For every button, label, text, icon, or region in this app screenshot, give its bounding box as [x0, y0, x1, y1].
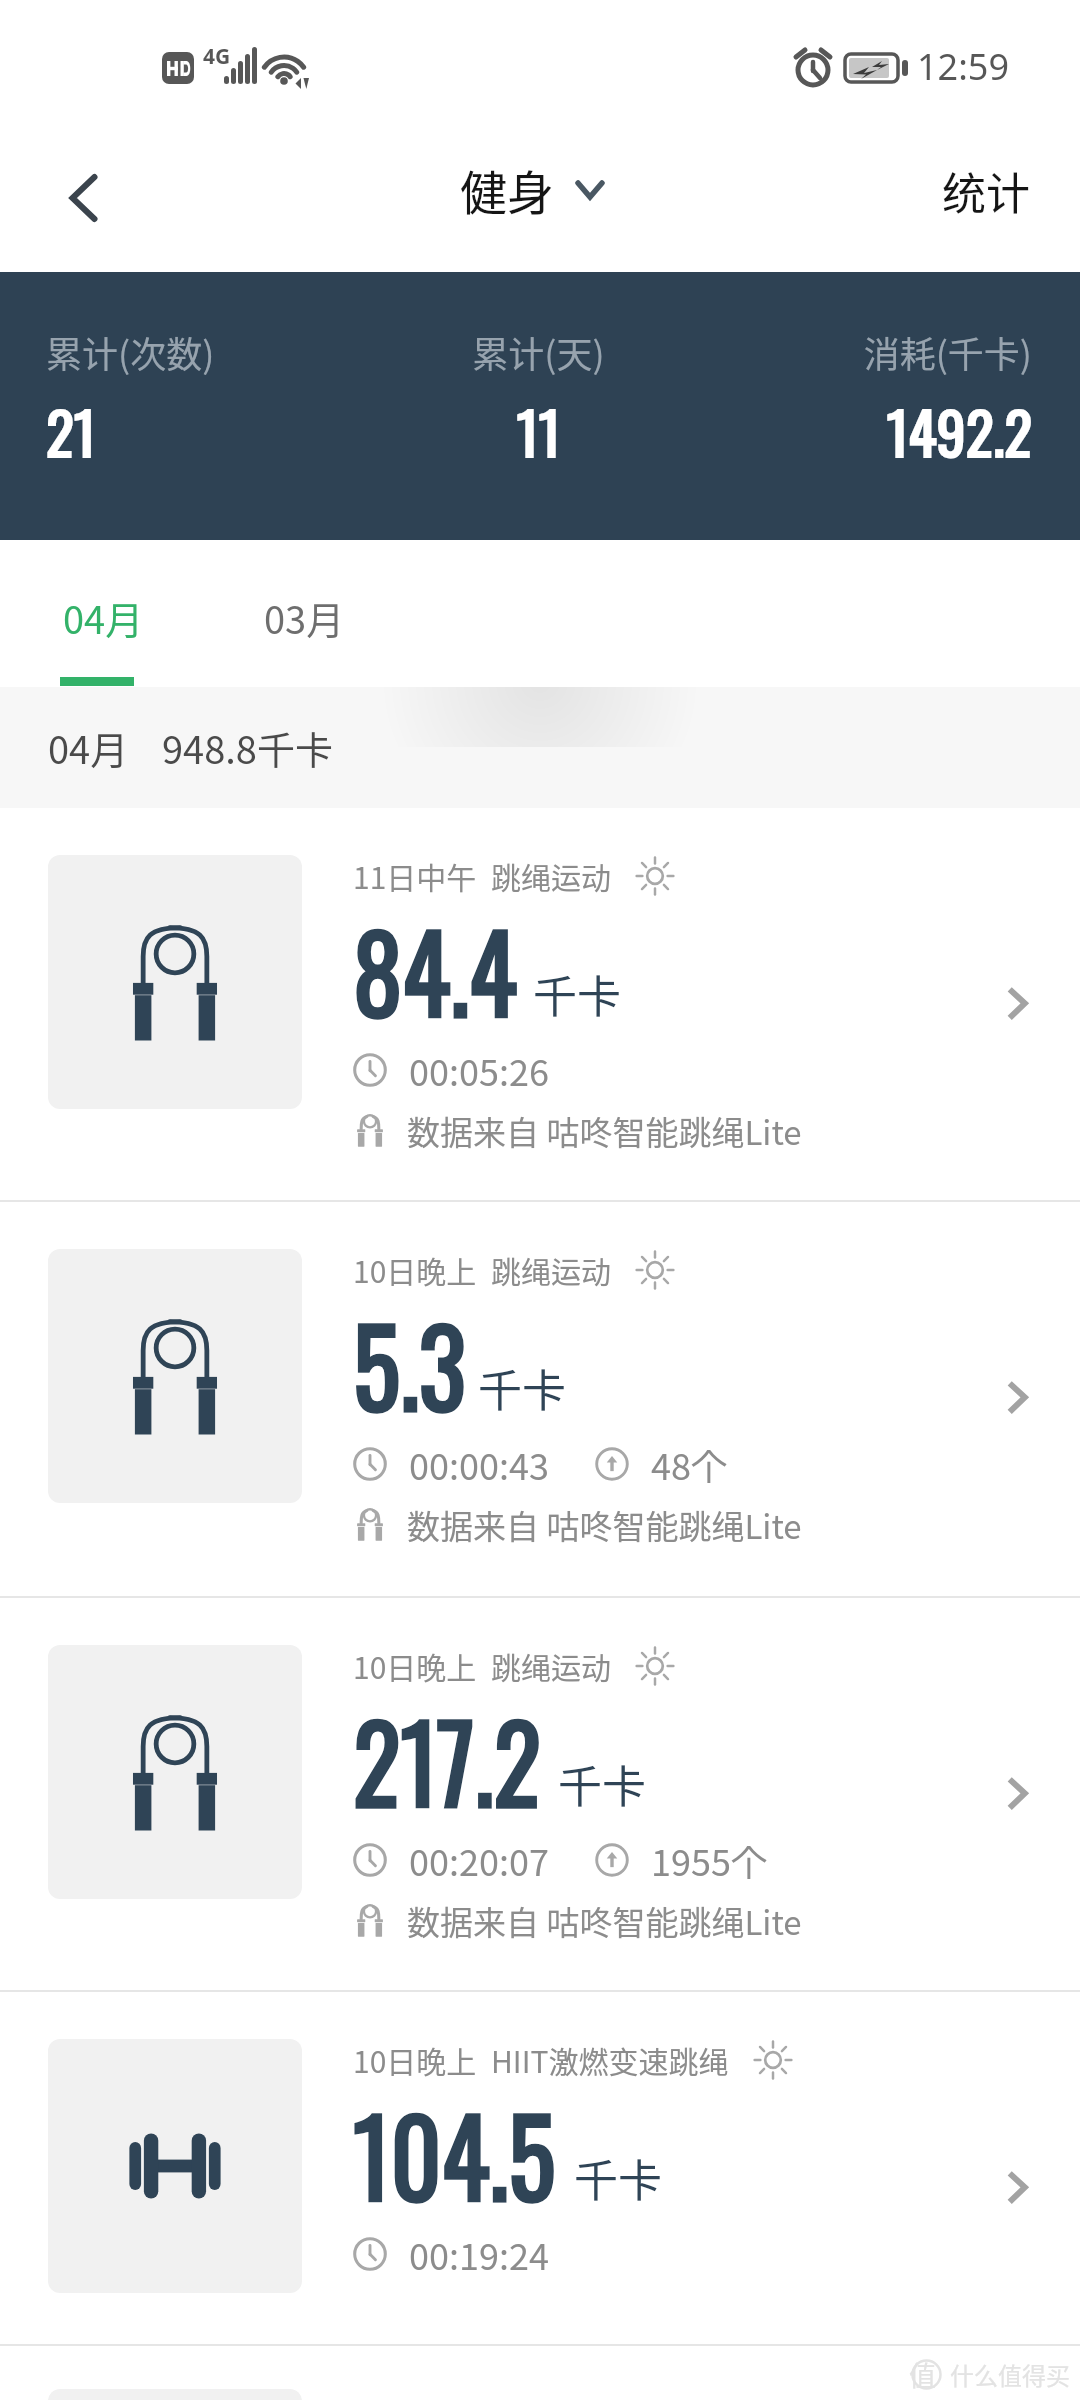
staticText: HIIT激燃变速跳绳	[491, 2038, 729, 2081]
staticText: 值	[909, 2355, 936, 2394]
staticText: 跳绳运动	[491, 854, 611, 897]
staticText: 数据来自 咕咚智能跳绳Lite	[407, 1501, 802, 1549]
button[interactable]: 健身	[460, 155, 604, 223]
staticText: 5.3	[353, 1285, 466, 1442]
staticText: 48个	[651, 1438, 727, 1490]
staticText: 00:20:07	[409, 1834, 549, 1886]
button[interactable]	[0, 2346, 1080, 2400]
staticText: 00:05:26	[409, 1044, 549, 1096]
staticText: 跳绳运动	[491, 1248, 611, 1291]
staticText: 1955个	[651, 1834, 767, 1886]
button[interactable]: 10日晚上	[0, 1202, 1080, 1596]
staticText: 00:19:24	[409, 2228, 549, 2280]
staticText: 千卡	[558, 1752, 646, 1816]
button[interactable]: 04月	[29, 540, 177, 687]
staticText: 数据来自 咕咚智能跳绳Lite	[407, 1897, 802, 1945]
staticText: 12:59	[917, 42, 1010, 91]
staticText: 什么值得买	[950, 2357, 1070, 2392]
staticText: 04月	[63, 590, 144, 645]
staticText: 03月	[264, 590, 345, 645]
staticText: 10日晚上	[353, 1248, 477, 1291]
button[interactable]: 03月	[230, 540, 378, 687]
staticText: 数据来自 咕咚智能跳绳Lite	[407, 1107, 802, 1155]
staticText: 1492.2	[703, 388, 1032, 474]
staticText: 跳绳运动	[491, 1644, 611, 1687]
staticText: 11	[374, 388, 703, 474]
staticText: 948.8千卡	[162, 720, 333, 775]
staticText: 21	[46, 388, 374, 474]
button[interactable]: Back	[0, 130, 140, 270]
staticText: 04月	[48, 720, 129, 775]
staticText: 10日晚上	[353, 2038, 477, 2081]
staticText: 217.2	[353, 1681, 541, 1838]
staticText: 11日中午	[353, 854, 477, 897]
staticText: 4G	[203, 42, 231, 71]
staticText: 00:00:43	[409, 1438, 549, 1490]
staticText: 千卡	[574, 2146, 662, 2210]
button[interactable]: 统计	[892, 134, 1080, 266]
staticText: 104.5	[353, 2075, 556, 2232]
staticText: 健身	[460, 155, 554, 223]
staticText: 累计(次数)	[46, 326, 374, 378]
staticText: 千卡	[478, 1356, 566, 1420]
staticText: 千卡	[533, 962, 621, 1026]
button[interactable]: 10日晚上	[0, 1598, 1080, 1990]
button[interactable]: 11日中午	[0, 808, 1080, 1200]
staticText: 10日晚上	[353, 1644, 477, 1687]
staticText: 84.4	[353, 891, 518, 1048]
staticText: 累计(天)	[374, 326, 703, 378]
staticText: 消耗(千卡)	[703, 326, 1032, 378]
button[interactable]: 10日晚上	[0, 1992, 1080, 2344]
staticText: 统计	[942, 159, 1030, 223]
